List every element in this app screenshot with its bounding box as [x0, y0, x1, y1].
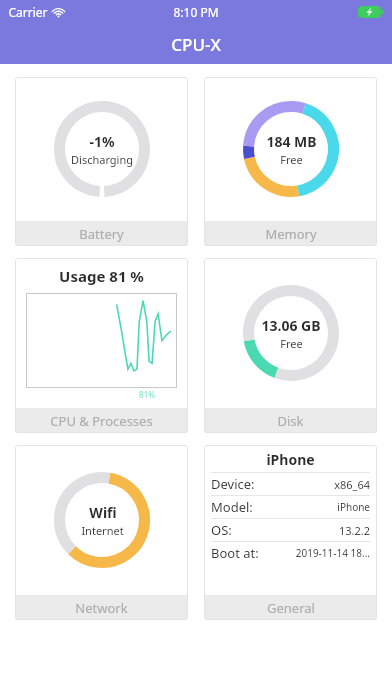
staticText: Free	[280, 336, 303, 351]
staticText: OS:	[211, 521, 232, 539]
button[interactable]: Wifi	[15, 445, 188, 620]
staticText: Usage 81 %	[59, 266, 144, 286]
staticText: x86_64	[334, 477, 370, 492]
staticText: 81%	[139, 389, 155, 400]
staticText: Memory	[265, 225, 317, 243]
staticText: iPhone	[337, 500, 370, 514]
staticText: CPU & Processes	[50, 412, 153, 430]
staticText: Discharging	[71, 152, 133, 167]
other: Battery charging	[358, 6, 384, 18]
staticText: Model:	[211, 498, 253, 516]
staticText: CPU-X	[171, 33, 221, 56]
staticText: 184 MB	[266, 132, 317, 151]
button[interactable]: 184 MB	[204, 77, 377, 246]
staticText: Internet	[81, 523, 124, 538]
staticText: General	[267, 599, 315, 617]
staticText: Wifi	[89, 503, 117, 522]
button[interactable]: Usage 81 %	[15, 258, 188, 433]
staticText: Network	[75, 599, 128, 617]
staticText: 2019-11-14 18...	[295, 546, 370, 560]
staticText: Battery	[79, 225, 124, 243]
other: Wi-Fi signal	[52, 6, 65, 19]
staticText: 13.06 GB	[261, 316, 321, 335]
staticText: iPhone	[266, 450, 315, 469]
staticText: 8:10 PM	[173, 4, 219, 20]
button[interactable]: iPhone	[204, 445, 377, 620]
staticText: Carrier	[8, 4, 48, 20]
staticText: -1%	[89, 132, 115, 151]
staticText: Boot at:	[211, 544, 259, 562]
button[interactable]: 13.06 GB	[204, 258, 377, 433]
button[interactable]: -1%	[15, 77, 188, 246]
staticText: Device:	[211, 475, 255, 493]
staticText: Free	[280, 152, 303, 167]
staticText: 13.2.2	[338, 523, 370, 538]
staticText: Disk	[277, 412, 304, 430]
